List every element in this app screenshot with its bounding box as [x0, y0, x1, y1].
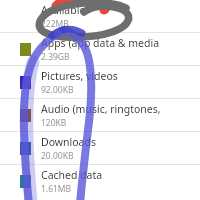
button[interactable]: Available: [0, 0, 200, 32]
other: Annotation markup: [0, 0, 200, 200]
button[interactable]: Downloads: [0, 132, 200, 164]
staticText: 20.00KB: [41, 150, 74, 162]
staticText: Audio (music, ringtones, podcas..: [41, 102, 194, 116]
staticText: 92.00KB: [41, 84, 74, 96]
staticText: 2.39GB: [41, 51, 70, 63]
staticText: Pictures, videos: [41, 69, 118, 83]
button[interactable]: Cached data: [0, 165, 200, 197]
staticText: Downloads: [41, 135, 96, 149]
staticText: 1.61MB: [41, 183, 72, 195]
button[interactable]: Pictures, videos: [0, 66, 200, 98]
button[interactable]: Apps (app data & media content): [0, 33, 200, 65]
staticText: 120KB: [41, 117, 67, 129]
staticText: 222MB: [41, 18, 69, 30]
staticText: Available: [41, 3, 86, 17]
button[interactable]: Audio (music, ringtones, podcas..: [0, 99, 200, 131]
staticText: Cached data: [41, 168, 103, 182]
staticText: Apps (app data & media content): [41, 36, 194, 50]
